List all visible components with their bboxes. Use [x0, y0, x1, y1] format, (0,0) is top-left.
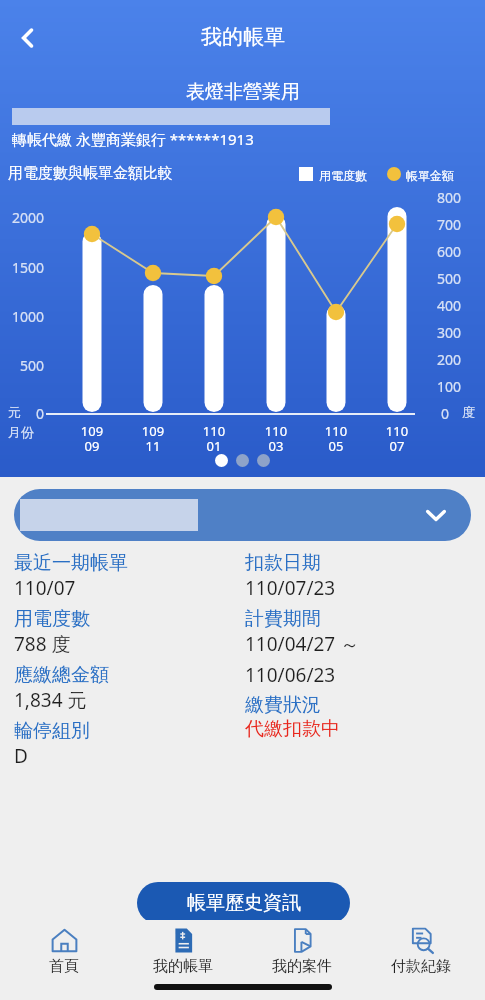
staticText: 我的案件 [272, 957, 332, 976]
staticText: 2000 [0, 208, 44, 227]
staticText: 110/07/23 [245, 575, 336, 601]
staticText: 110 03 [246, 422, 306, 455]
staticText: 700 [437, 215, 462, 234]
staticText: 繳費狀況 [245, 693, 321, 717]
staticText: 110/04/27 ～ 110/06/23 [245, 631, 360, 687]
button[interactable]: 我的案件 [247, 923, 357, 980]
staticText: 計費期間 [245, 607, 321, 631]
staticText: 付款紀錄 [391, 957, 451, 976]
staticText: 109 09 [62, 422, 122, 455]
staticText: 我的帳單 [153, 957, 213, 976]
staticText: 800 [437, 188, 462, 207]
staticText: 用電度數 [319, 168, 367, 183]
staticText: 100 [437, 377, 462, 396]
staticText: 帳單歷史資訊 [187, 891, 301, 915]
staticText: 月份 [8, 424, 34, 440]
staticText: 600 [437, 242, 462, 261]
staticText: 110/07 [14, 575, 76, 601]
staticText: 表燈非營業用 [186, 80, 300, 104]
staticText: 轉帳代繳 永豐商業銀行 ******1913 [12, 129, 254, 149]
staticText: 110 05 [306, 422, 366, 455]
staticText: 用電度數與帳單金額比較 [8, 164, 173, 183]
staticText: 0 [441, 404, 450, 423]
staticText: 300 [437, 323, 462, 342]
button[interactable]: 首頁 [9, 923, 119, 980]
staticText: 首頁 [49, 957, 79, 976]
button[interactable]: 付款紀錄 [366, 923, 476, 980]
button[interactable] [215, 454, 228, 467]
staticText: 109 11 [123, 422, 183, 455]
staticText: 應繳總金額 [14, 663, 109, 687]
staticText: 最近一期帳單 [14, 551, 128, 575]
staticText: 1,834 元 [14, 687, 87, 713]
staticText: 788 度 [14, 631, 71, 657]
staticText: 1000 [0, 307, 44, 326]
staticText: D [14, 743, 28, 769]
staticText: 1500 [0, 258, 44, 277]
staticText: 用電度數 [14, 607, 90, 631]
button[interactable]: 選擇電號 [14, 489, 471, 541]
staticText: 500 [0, 356, 44, 375]
staticText: 400 [437, 296, 462, 315]
staticText: 帳單金額 [406, 168, 454, 183]
button[interactable]: 我的帳單 [128, 923, 238, 980]
staticText: 200 [437, 350, 462, 369]
staticText: 輪停組別 [14, 719, 90, 743]
button[interactable] [257, 454, 270, 467]
staticText: 500 [437, 269, 462, 288]
staticText: 代繳扣款中 [245, 717, 340, 741]
staticText: 110 01 [184, 422, 244, 455]
staticText: 扣款日期 [245, 551, 321, 575]
button[interactable]: 返回 [8, 18, 48, 58]
button[interactable] [236, 454, 249, 467]
staticText: 元 [8, 404, 21, 420]
button[interactable]: 帳單歷史資訊 [137, 882, 350, 924]
staticText: 度 [462, 404, 475, 420]
staticText: 我的帳單 [201, 24, 285, 50]
staticText: 110 07 [367, 422, 427, 455]
staticText: 0 [0, 404, 44, 423]
